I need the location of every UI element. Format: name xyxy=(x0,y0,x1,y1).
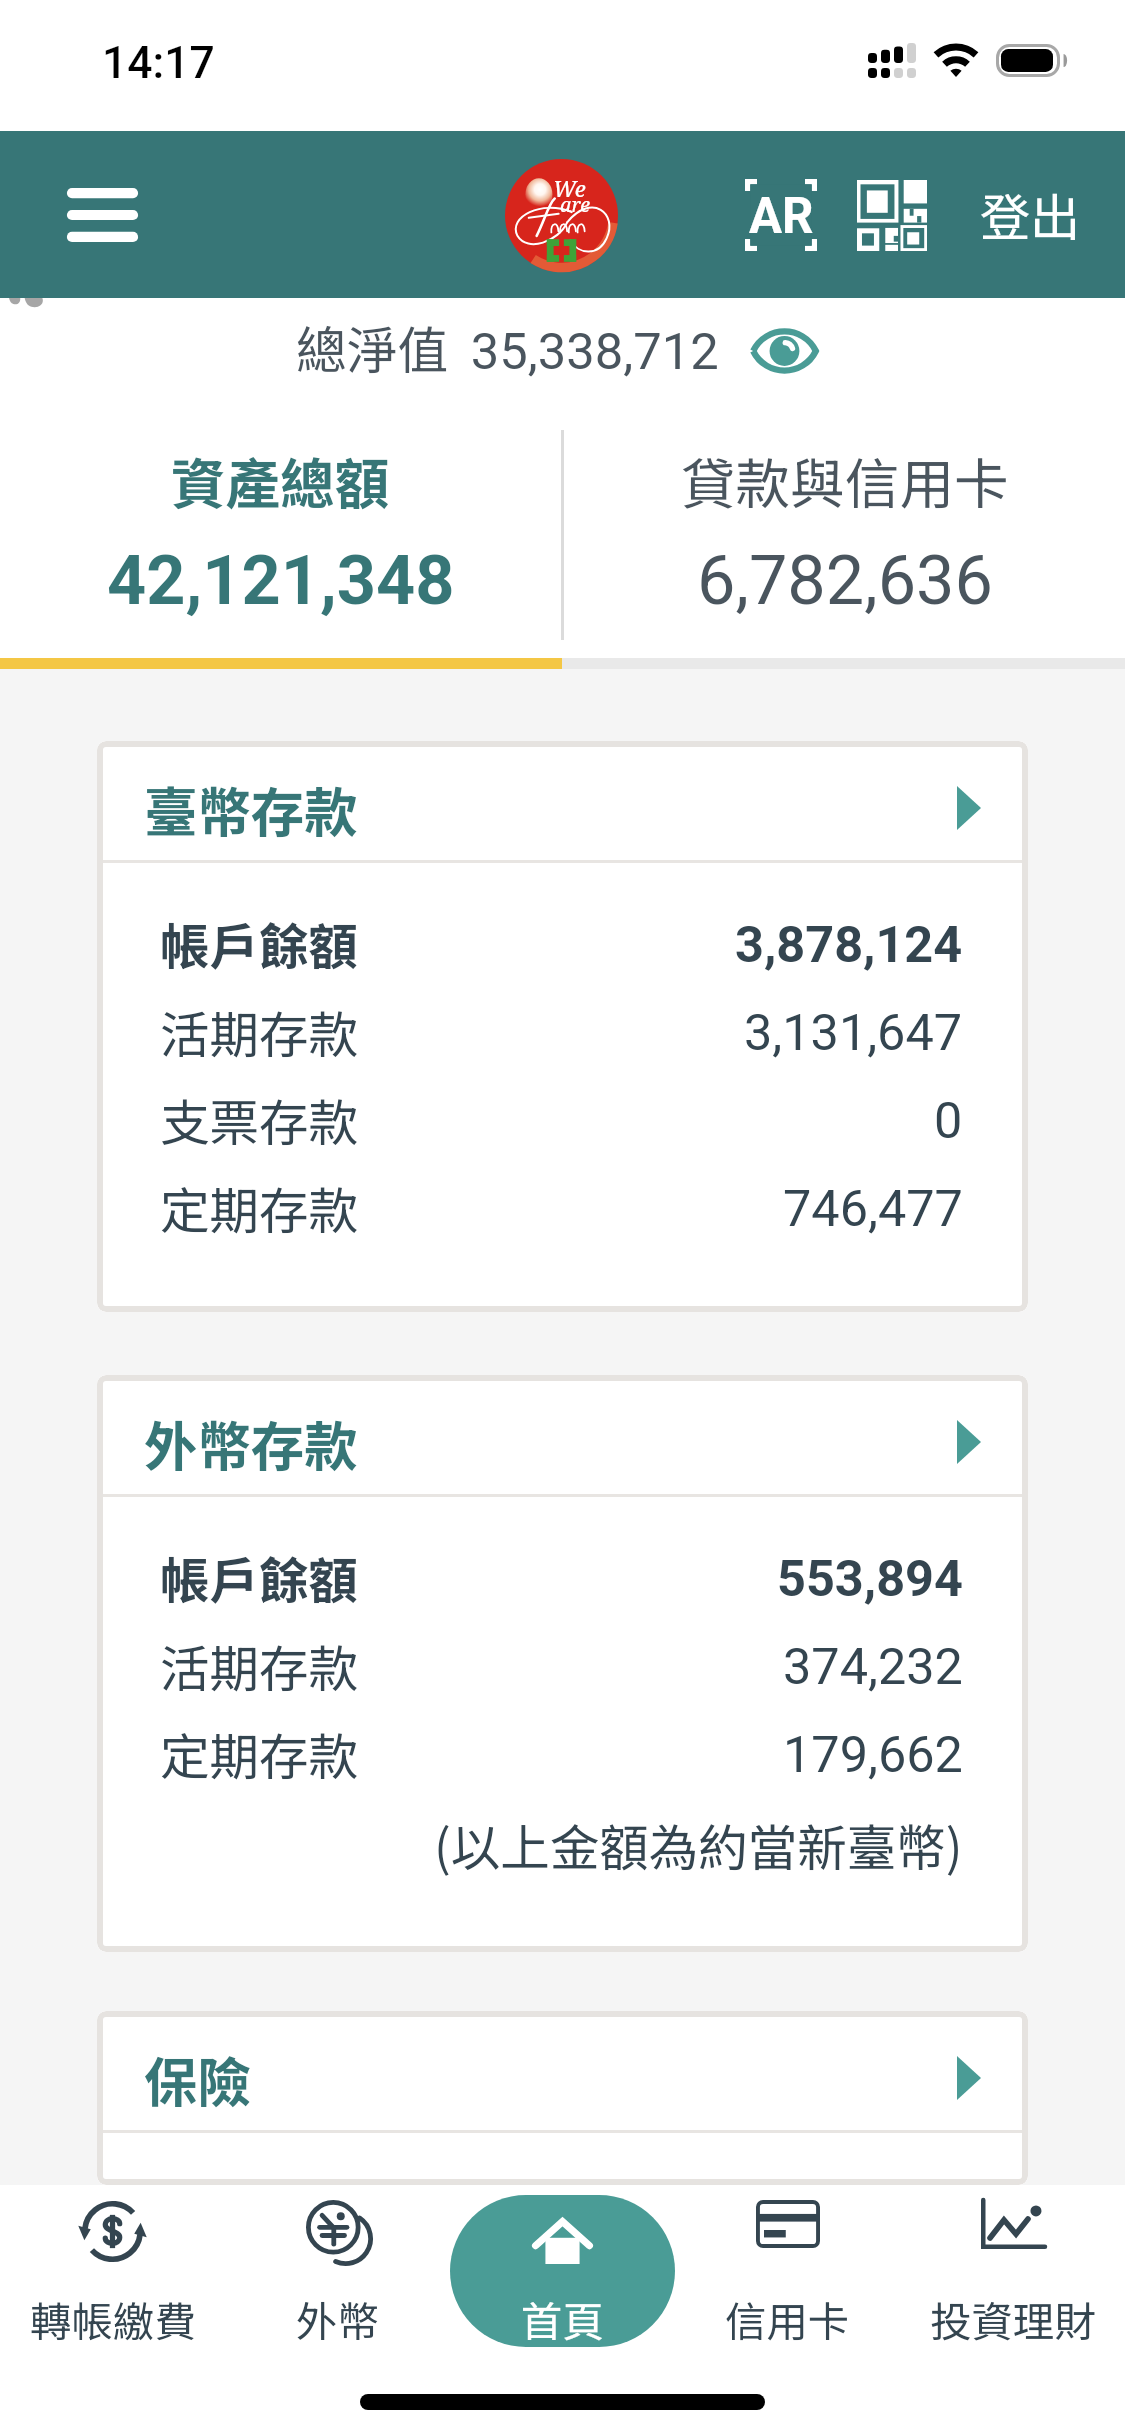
staticText: 定期存款 xyxy=(160,1718,358,1790)
button[interactable]: 臺幣存款 xyxy=(97,741,1028,860)
button[interactable]: AR xyxy=(725,143,836,287)
staticText: 支票存款 xyxy=(160,1084,358,1156)
button[interactable]: 轉帳繳費 xyxy=(0,2185,225,2383)
staticText: 首頁 xyxy=(521,2289,604,2347)
staticText: 信用卡 xyxy=(725,2289,850,2349)
staticText: 14:17 xyxy=(102,37,215,89)
staticText: 定期存款 xyxy=(160,1172,358,1244)
button[interactable]: 資產總額 xyxy=(0,409,561,658)
staticText: 投資理財 xyxy=(930,2289,1096,2349)
button[interactable]: 首頁 xyxy=(450,2195,675,2347)
staticText: 活期存款 xyxy=(160,996,358,1068)
staticText: 總淨值 35,338,712 xyxy=(296,310,719,383)
button[interactable]: QR code scanner xyxy=(836,143,947,287)
staticText: 資產總額 xyxy=(171,441,390,520)
staticText: 3,878,124 xyxy=(735,915,963,974)
staticText: 帳戶餘額 xyxy=(160,1542,358,1614)
staticText: 6,782,636 xyxy=(697,541,993,621)
staticText: 轉帳繳費 xyxy=(30,2289,196,2349)
staticText: are xyxy=(560,191,591,218)
staticText: 0 xyxy=(934,1091,963,1150)
staticText: AR xyxy=(749,187,814,245)
staticText: 臺幣存款 xyxy=(144,770,358,847)
button[interactable]: Toggle balance visibility xyxy=(739,312,829,390)
button[interactable]: 信用卡 xyxy=(675,2185,900,2383)
button[interactable]: 投資理財 xyxy=(900,2185,1125,2383)
button[interactable]: 外幣存款 xyxy=(97,1375,1028,1494)
staticText: 登出 xyxy=(980,178,1081,251)
staticText: 外幣 xyxy=(296,2289,379,2349)
button[interactable]: 保險 xyxy=(97,2011,1028,2130)
staticText: 553,894 xyxy=(777,1549,963,1608)
staticText: 外幣存款 xyxy=(144,1404,358,1481)
staticText: 帳戶餘額 xyxy=(160,908,358,980)
staticText: 活期存款 xyxy=(160,1630,358,1702)
staticText: 42,121,348 xyxy=(107,541,455,621)
staticText: We xyxy=(553,173,586,203)
button[interactable]: 貸款與信用卡 xyxy=(564,409,1125,658)
staticText: 179,662 xyxy=(783,1725,963,1784)
staticText: 貸款與信用卡 xyxy=(681,441,1009,520)
button[interactable]: Menu xyxy=(30,143,174,287)
staticText: (以上金額為約當新臺幣) xyxy=(434,1809,963,1881)
staticText: 3,131,647 xyxy=(744,1003,963,1062)
staticText: 746,477 xyxy=(783,1179,963,1238)
button[interactable]: 外幣 xyxy=(225,2185,450,2383)
button[interactable]: 登出 xyxy=(947,154,1087,275)
staticText: 374,232 xyxy=(783,1637,963,1696)
staticText: 保險 xyxy=(144,2040,251,2117)
